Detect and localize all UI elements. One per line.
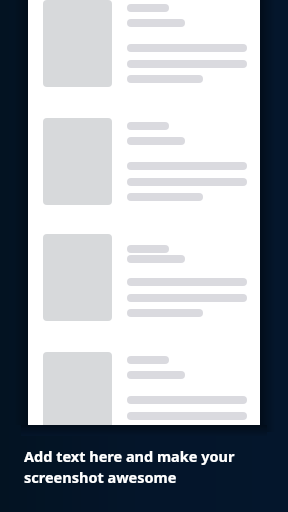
button[interactable]: List item placeholder [28,118,260,230]
button[interactable]: List item placeholder [28,352,260,425]
button[interactable]: List item placeholder [28,0,260,112]
staticText: Add text here and make your screenshot a… [24,446,235,487]
button[interactable]: List item placeholder [28,234,260,346]
